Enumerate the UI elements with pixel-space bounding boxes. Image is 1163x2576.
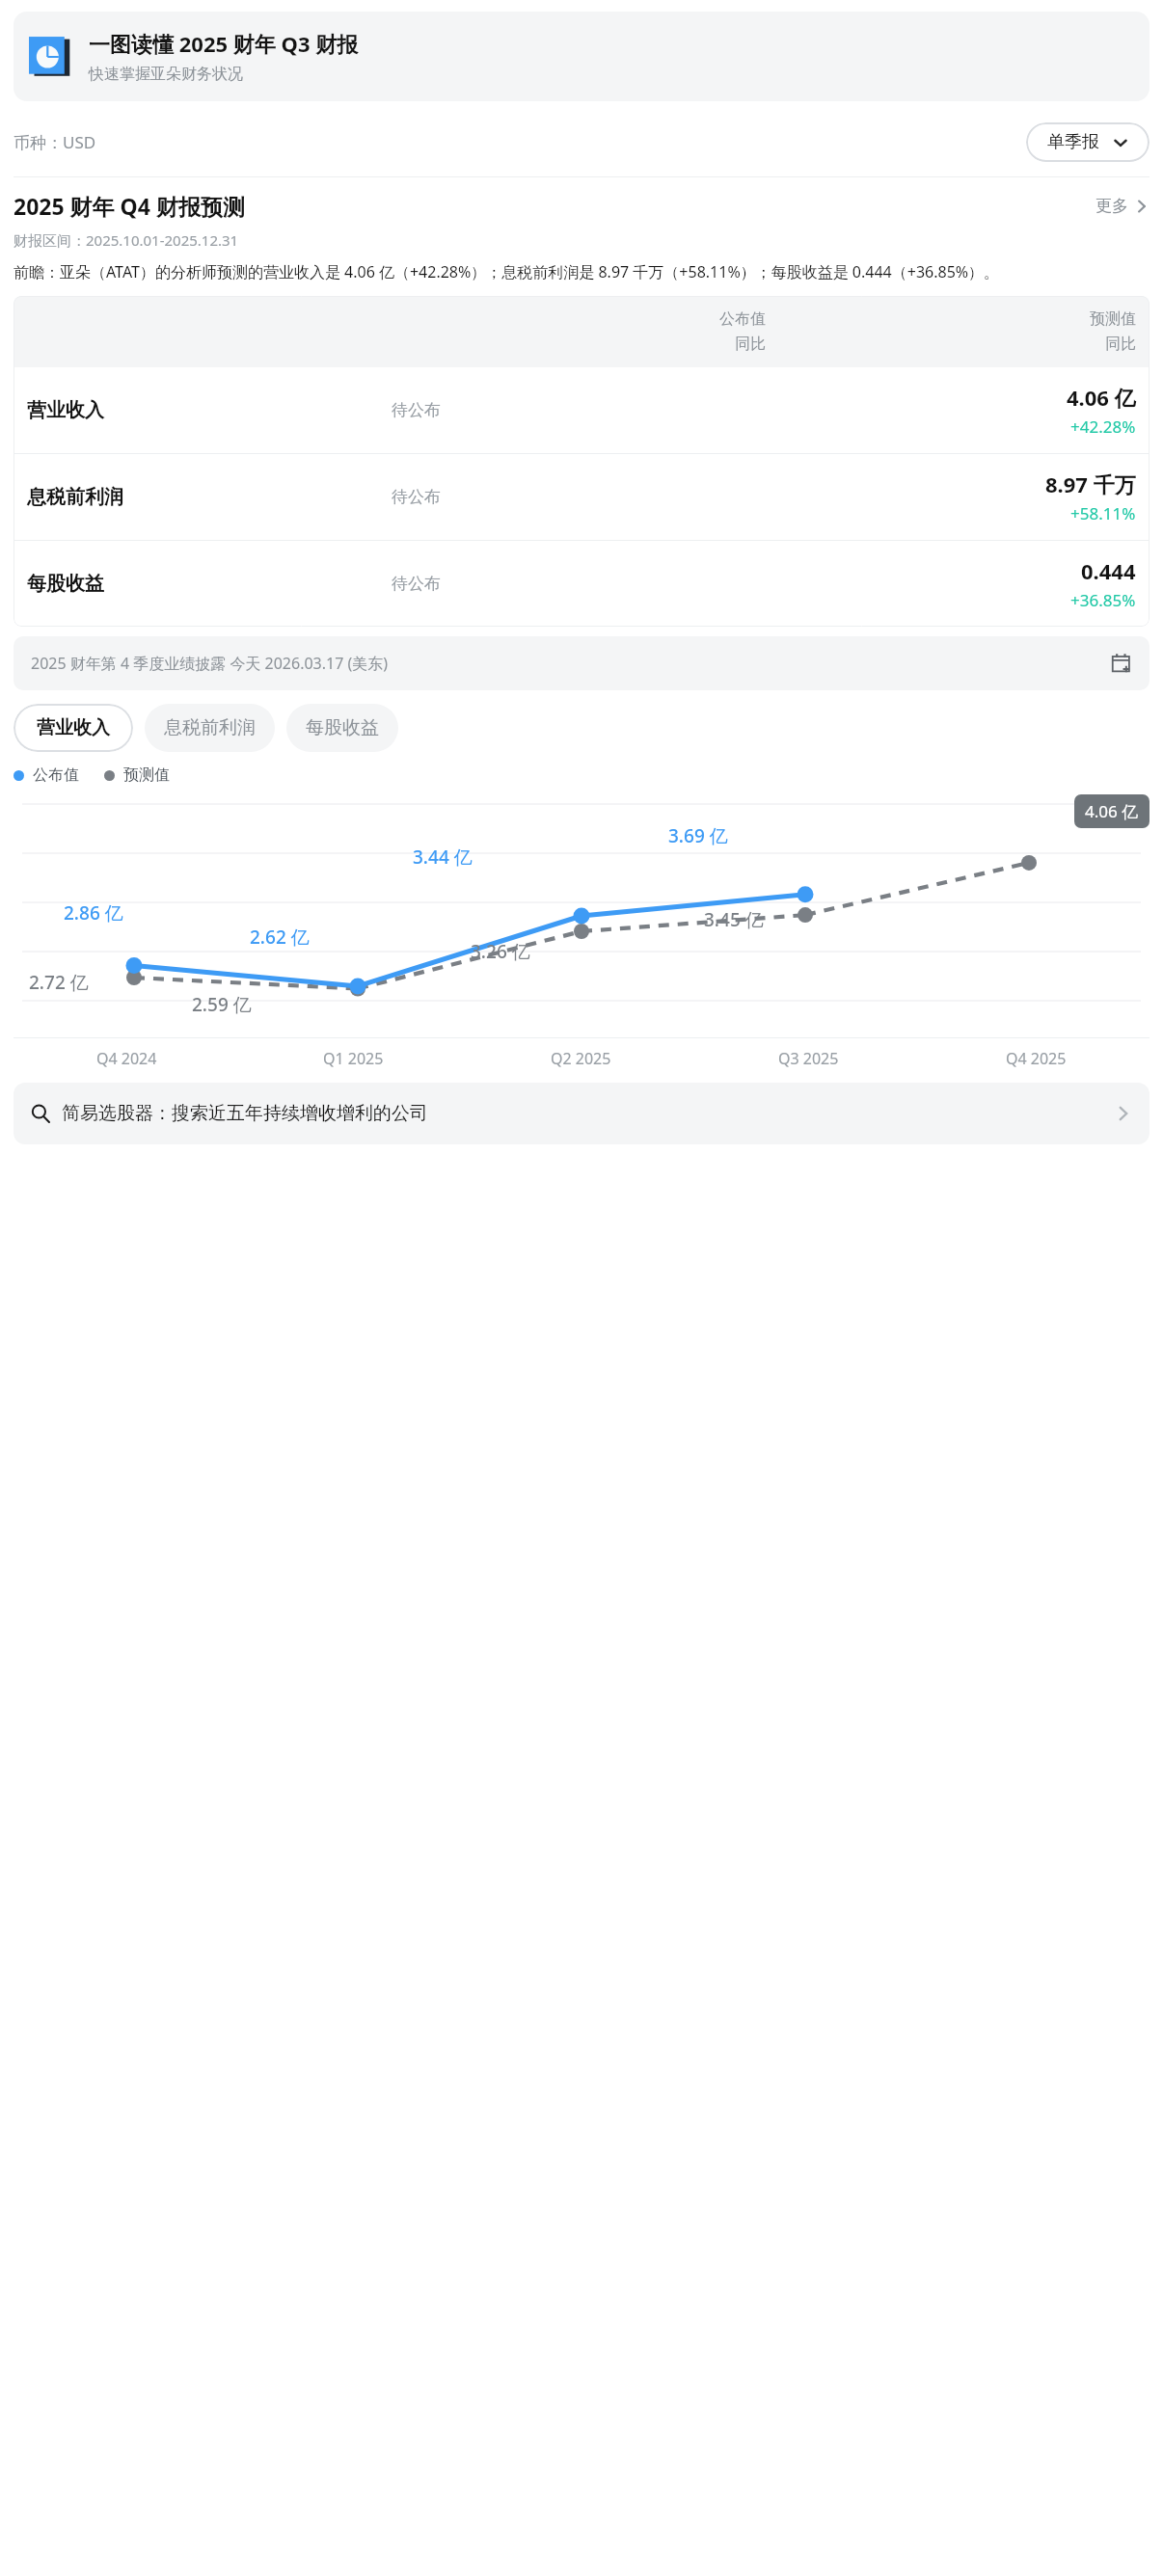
staticText: 预测值 [123,765,170,785]
staticText: 3.69 亿 [668,823,728,848]
staticText: 同比 [735,335,766,354]
button[interactable]: 每股收益 [14,541,1149,627]
button[interactable]: 2025 财年第 4 季度业绩披露 今天 2026.03.17 (美东) [14,636,1149,690]
staticText: 快速掌握亚朵财务状况 [89,65,243,84]
staticText: 4.06 亿 [1085,800,1139,822]
staticText: 单季报 [1047,131,1099,153]
staticText: 同比 [1105,335,1136,354]
staticText: 息税前利润 [27,485,392,509]
staticText: +42.28% [1070,416,1136,438]
staticText: 3.44 亿 [413,845,473,870]
button[interactable]: 单季报 [1026,122,1149,162]
staticText: Q4 2025 [1006,1048,1067,1069]
staticText: 2025 财年 Q4 财报预测 [14,191,245,221]
other: 添加日历提醒 [1111,653,1132,674]
staticText: Q3 2025 [778,1048,839,1069]
staticText: 财报区间：2025.10.01-2025.12.31 [14,230,239,250]
staticText: 2.72 亿 [29,970,89,995]
staticText: 币种：USD [14,131,96,153]
staticText: 每股收益 [27,572,392,596]
staticText: 一图读懂 2025 财年 Q3 财报 [89,29,359,58]
staticText: 预测值 [1090,309,1136,329]
button[interactable]: 息税前利润 [14,454,1149,540]
staticText: 更多 [1095,196,1128,216]
staticText: 3.26 亿 [471,939,530,964]
staticText: 营业收入 [27,398,392,422]
staticText: 待公布 [392,400,771,420]
button[interactable]: 息税前利润 [145,704,275,752]
button[interactable]: 更多 [1095,196,1149,216]
staticText: 2.59 亿 [192,992,252,1017]
staticText: 2025 财年第 4 季度业绩披露 今天 2026.03.17 (美东) [31,653,389,674]
staticText: 8.97 千万 [1045,470,1136,498]
staticText: 息税前利润 [164,716,256,739]
staticText: 前瞻：亚朵（ATAT）的分析师预测的营业收入是 4.06 亿（+42.28%）；… [14,261,1000,282]
staticText: Q2 2025 [551,1048,611,1069]
staticText: 2.62 亿 [250,925,310,950]
staticText: 2.86 亿 [64,900,123,926]
button[interactable]: 简易选股器：搜索近五年持续增收增利的公司 [14,1083,1149,1144]
button[interactable]: 营业收入 [14,704,133,752]
button[interactable]: 一图读懂 2025 财年 Q3 财报 [14,12,1149,101]
other: 进入 [1115,1105,1132,1122]
staticText: +36.85% [1070,589,1136,611]
button[interactable]: 每股收益 [286,704,398,752]
staticText: 每股收益 [306,716,379,739]
staticText: 公布值 [33,765,79,785]
staticText: 公布值 [719,309,766,329]
staticText: 3.45 亿 [704,907,764,932]
button[interactable]: 营业收入 [14,367,1149,453]
staticText: 4.06 亿 [1067,383,1136,412]
staticText: Q1 2025 [323,1048,384,1069]
staticText: Q4 2024 [96,1048,157,1069]
staticText: 0.444 [1081,556,1136,585]
staticText: 营业收入 [37,716,110,739]
staticText: 简易选股器：搜索近五年持续增收增利的公司 [62,1102,428,1125]
staticText: 待公布 [392,574,771,594]
staticText: +58.11% [1070,502,1136,524]
staticText: 待公布 [392,487,771,507]
